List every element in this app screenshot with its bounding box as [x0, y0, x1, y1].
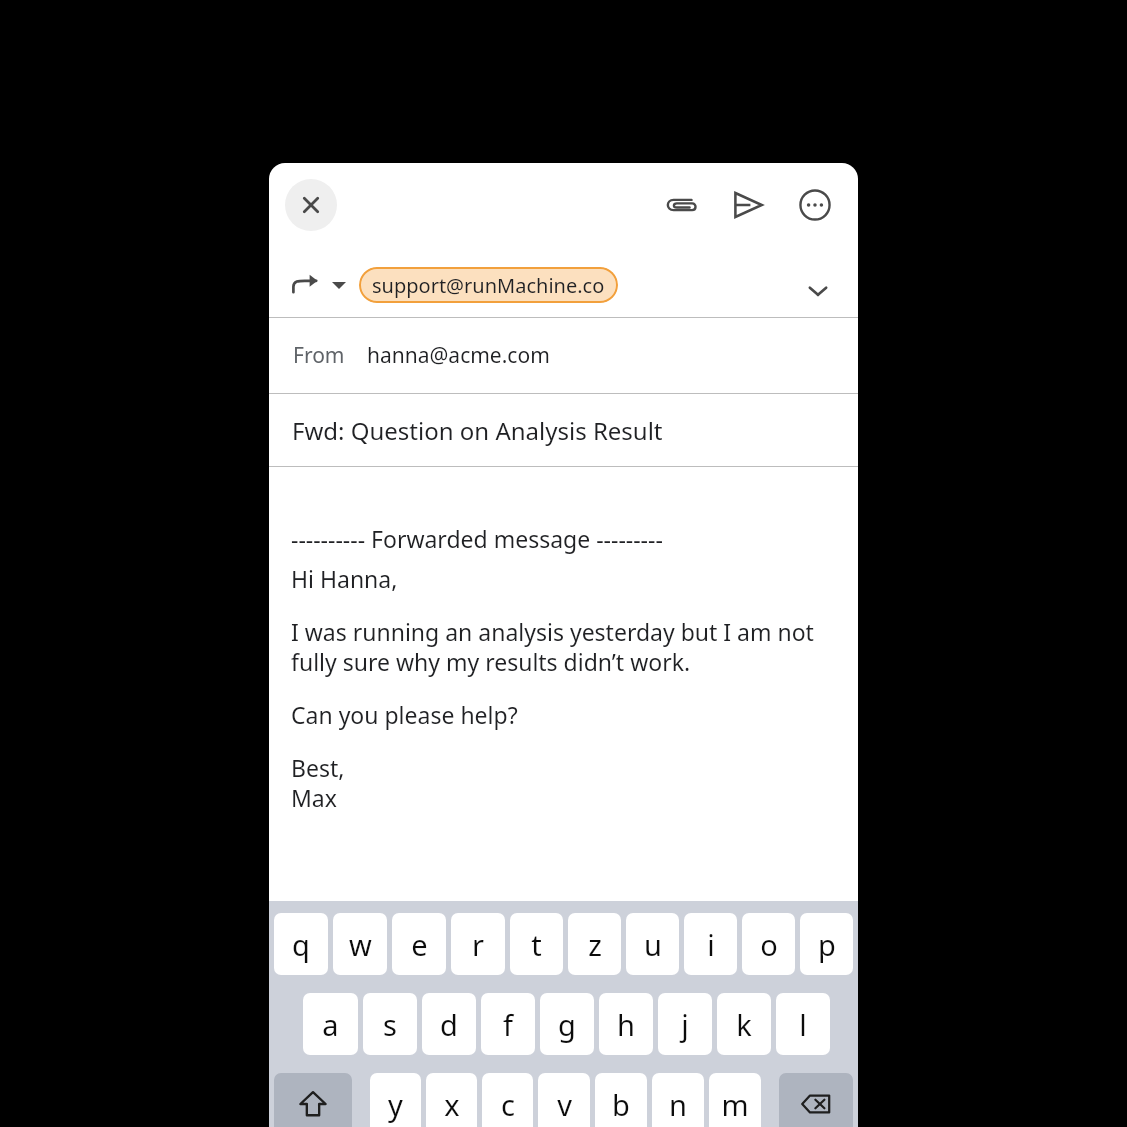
button[interactable]: g [540, 993, 594, 1055]
staticText: m [721, 1085, 749, 1124]
button[interactable]: n [652, 1073, 704, 1127]
button[interactable]: ---------- Forwarded message --------- [269, 467, 858, 901]
button[interactable]: z [568, 913, 621, 975]
staticText: ---------- Forwarded message --------- [291, 523, 663, 554]
staticText: I was running an analysis yesterday but … [291, 616, 814, 677]
button[interactable]: q [274, 913, 328, 975]
staticText: Best, Max [291, 752, 345, 813]
button[interactable]: i [684, 913, 737, 975]
staticText: l [799, 1005, 807, 1044]
button[interactable]: Expand recipients [796, 269, 840, 313]
button[interactable]: Change reply type [329, 275, 349, 295]
staticText: h [617, 1005, 635, 1044]
button[interactable]: Send [722, 179, 774, 231]
button[interactable]: p [800, 913, 853, 975]
button[interactable]: l [776, 993, 830, 1055]
staticText: k [736, 1005, 752, 1044]
staticText: support@runMachine.co [372, 272, 605, 299]
button[interactable]: w [333, 913, 387, 975]
staticText: i [707, 925, 715, 964]
button[interactable]: d [422, 993, 476, 1055]
staticText: g [558, 1005, 576, 1044]
button[interactable]: f [481, 993, 535, 1055]
staticText: v [557, 1085, 572, 1124]
staticText: d [440, 1005, 458, 1044]
staticText: b [612, 1085, 630, 1124]
staticText: Fwd: Question on Analysis Result [292, 414, 663, 447]
staticText: q [292, 925, 310, 964]
button[interactable]: t [510, 913, 563, 975]
button[interactable]: x [426, 1073, 477, 1127]
staticText: e [411, 925, 428, 964]
button[interactable]: Shift [274, 1073, 352, 1127]
button[interactable]: k [717, 993, 771, 1055]
staticText: Can you please help? [291, 699, 518, 730]
staticText: t [531, 925, 542, 964]
button[interactable]: s [363, 993, 417, 1055]
button[interactable]: b [595, 1073, 647, 1127]
staticText: r [472, 925, 484, 964]
staticText: p [818, 925, 836, 964]
button[interactable]: o [742, 913, 795, 975]
staticText: x [444, 1085, 460, 1124]
button[interactable]: h [599, 993, 653, 1055]
button[interactable]: More options [789, 179, 841, 231]
staticText: c [501, 1085, 515, 1124]
button[interactable]: Close [285, 179, 337, 231]
button[interactable]: From [269, 318, 858, 393]
staticText: From [293, 341, 345, 370]
button[interactable]: u [626, 913, 679, 975]
staticText: s [383, 1005, 397, 1044]
staticText: y [388, 1085, 403, 1124]
staticText: o [760, 925, 778, 964]
button[interactable]: c [482, 1073, 533, 1127]
button[interactable]: Fwd: Question on Analysis Result [269, 394, 858, 466]
button[interactable]: Backspace [779, 1073, 853, 1127]
button[interactable]: a [303, 993, 358, 1055]
button[interactable]: y [370, 1073, 421, 1127]
button[interactable]: m [709, 1073, 761, 1127]
staticText: Hi Hanna, [291, 563, 398, 594]
staticText: z [588, 925, 602, 964]
button[interactable]: j [658, 993, 712, 1055]
button[interactable]: e [392, 913, 446, 975]
staticText: a [322, 1005, 339, 1044]
button[interactable]: support@runMachine.co [359, 267, 618, 303]
staticText: w [349, 925, 372, 964]
button[interactable]: Attach file [654, 179, 706, 231]
staticText: u [644, 925, 662, 964]
button[interactable]: v [538, 1073, 590, 1127]
staticText: f [503, 1005, 513, 1044]
staticText: n [669, 1085, 687, 1124]
staticText: hanna@acme.com [367, 341, 550, 370]
staticText: j [681, 1005, 689, 1044]
button[interactable]: r [451, 913, 505, 975]
